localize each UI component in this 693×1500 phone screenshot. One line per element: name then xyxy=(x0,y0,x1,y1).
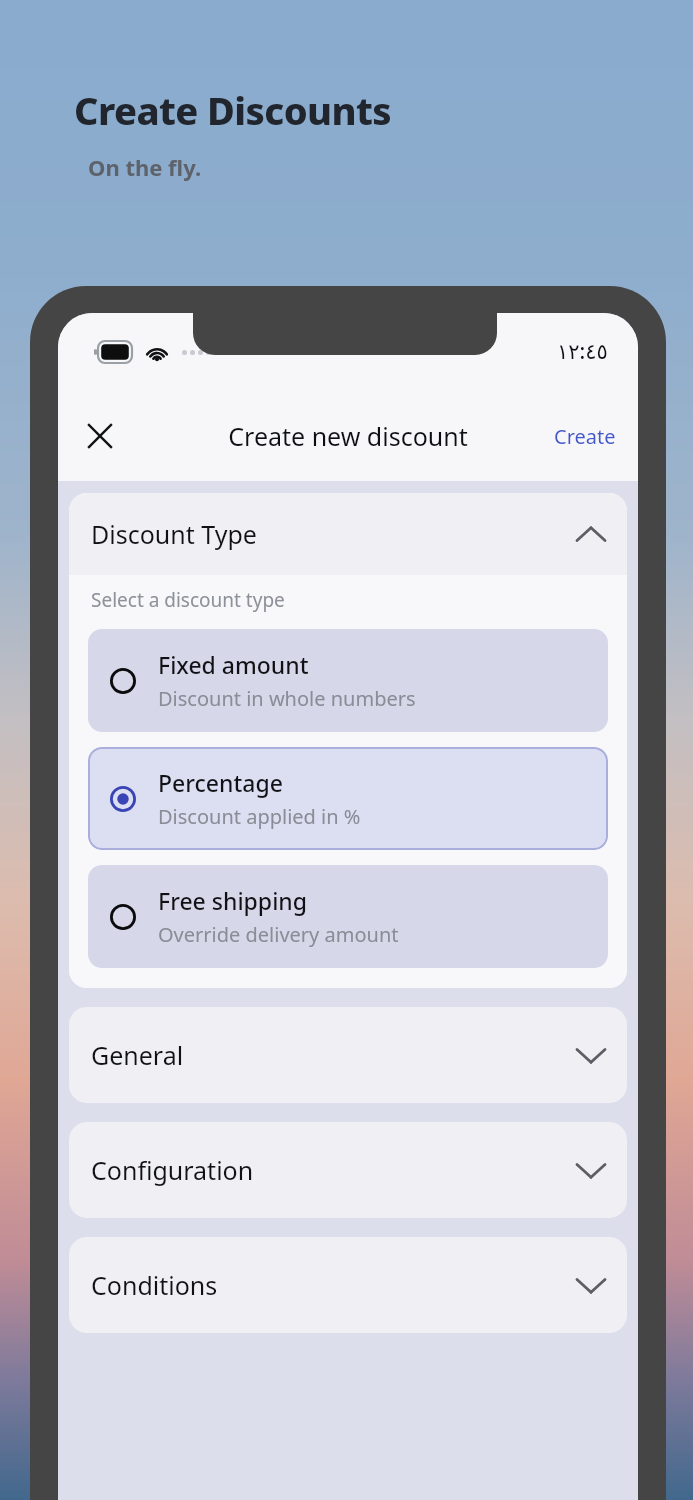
staticText: Percentage xyxy=(158,767,283,798)
button[interactable]: Conditions xyxy=(69,1237,627,1333)
button[interactable]: General xyxy=(69,1007,627,1103)
button[interactable]: Configuration xyxy=(69,1122,627,1218)
button[interactable]: Free shipping xyxy=(88,865,608,968)
button[interactable]: Close xyxy=(74,410,126,462)
button[interactable]: Create xyxy=(542,415,628,458)
staticText: Free shipping xyxy=(158,885,308,916)
staticText: Create new discount xyxy=(228,419,468,453)
staticText: ١٢:٤٥ xyxy=(557,337,608,366)
staticText: Create Discounts xyxy=(74,84,392,136)
staticText: Override delivery amount xyxy=(158,921,399,948)
staticText: Fixed amount xyxy=(158,649,309,680)
staticText: Create xyxy=(554,423,616,450)
staticText: Discount Type xyxy=(91,517,577,551)
staticText: Conditions xyxy=(91,1268,577,1302)
staticText: General xyxy=(91,1038,577,1072)
button[interactable]: Discount Type xyxy=(69,493,627,575)
staticText: On the fly. xyxy=(88,152,202,182)
button[interactable]: Percentage xyxy=(88,747,608,850)
staticText: Select a discount type xyxy=(91,587,285,613)
button[interactable]: Fixed amount xyxy=(88,629,608,732)
staticText: Discount applied in % xyxy=(158,803,361,830)
staticText: Discount in whole numbers xyxy=(158,685,416,712)
staticText: Configuration xyxy=(91,1153,577,1187)
